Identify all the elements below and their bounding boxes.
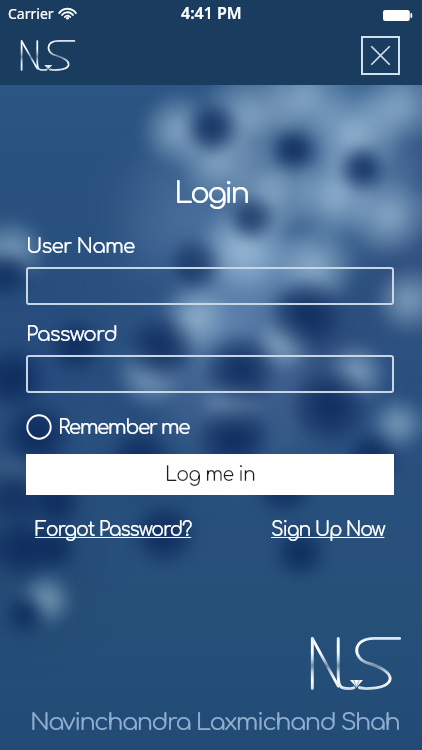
button[interactable]: Forgot Password? — [35, 519, 192, 540]
button[interactable]: Log me in — [26, 454, 394, 495]
button[interactable]: Remember me — [26, 414, 189, 440]
button[interactable] — [26, 267, 394, 305]
button[interactable]: Close — [362, 37, 399, 74]
staticText: Remember me — [58, 416, 189, 438]
staticText: 4:41 PM — [181, 2, 242, 24]
staticText: Password — [26, 323, 117, 345]
staticText: Carrier — [8, 4, 54, 22]
button[interactable]: Sign Up Now — [271, 519, 385, 540]
staticText: Log me in — [165, 464, 256, 485]
staticText: Login — [0, 177, 422, 209]
staticText: Navinchandra Laxmichand Shah — [30, 709, 400, 736]
staticText: User Name — [26, 235, 135, 257]
button[interactable] — [26, 355, 394, 393]
